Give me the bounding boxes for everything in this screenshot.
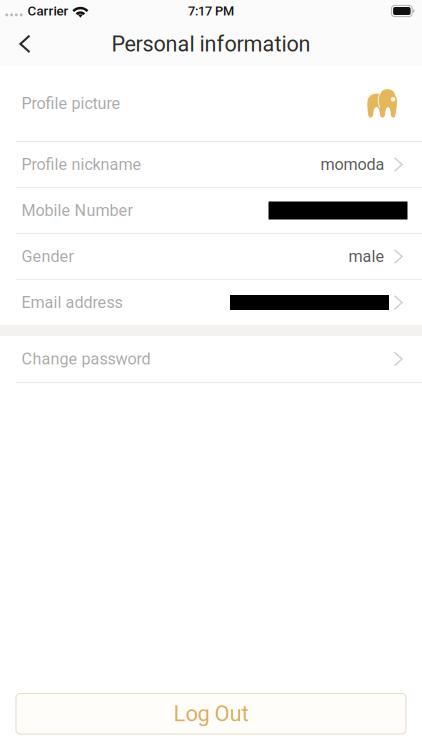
staticText: Mobile Number [21,201,132,220]
button[interactable]: Profile picture [0,66,422,141]
button[interactable]: Log Out [0,693,422,750]
staticText: Email address [21,293,122,312]
button[interactable]: Change password [0,336,422,382]
staticText: 7:17 PM [188,3,234,18]
staticText: Change password [21,349,150,368]
staticText: Gender [21,247,73,266]
button[interactable]: Back [0,22,50,66]
button[interactable]: Gender [0,234,422,279]
staticText: Profile picture [21,94,120,113]
staticText: Personal information [111,31,310,57]
button[interactable]: Profile nickname [0,142,422,187]
staticText: male [348,247,384,266]
staticText: Profile nickname [21,155,141,174]
staticText: momoda [320,155,384,174]
staticText: Log Out [173,701,248,726]
staticText: Carrier [27,3,68,19]
button[interactable]: Mobile Number [0,188,422,233]
button[interactable]: Email address [0,280,422,325]
